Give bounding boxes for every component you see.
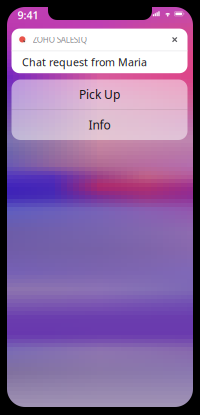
staticText: 9:41 <box>17 8 38 22</box>
button[interactable]: Pick Up <box>11 79 187 109</box>
staticText: Info <box>88 117 110 133</box>
button[interactable]: Info <box>11 110 187 140</box>
staticText: Chat request from Maria <box>22 55 147 69</box>
staticText: Pick Up <box>79 86 120 102</box>
staticText: ZOHO SALESIQ <box>33 34 87 45</box>
button[interactable]: Close <box>168 33 182 47</box>
